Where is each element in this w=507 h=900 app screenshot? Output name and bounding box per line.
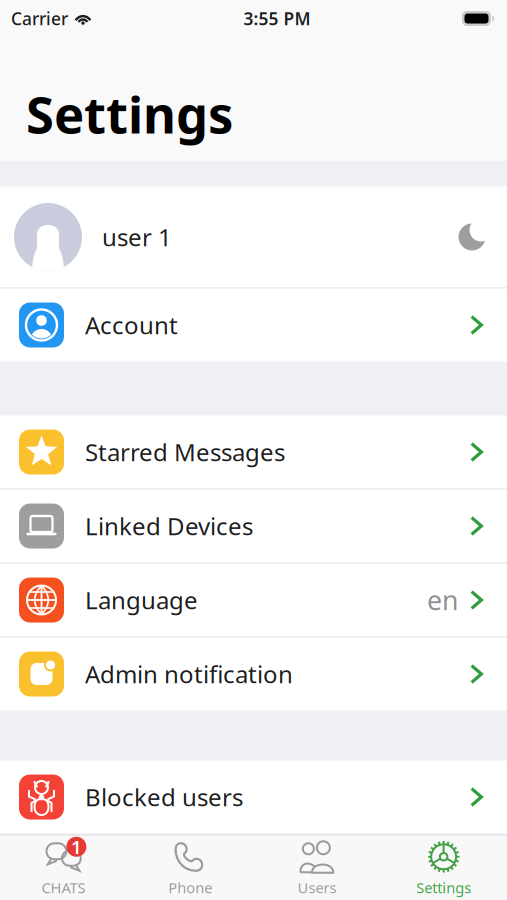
staticText: Carrier xyxy=(11,7,68,30)
button[interactable]: user 1 xyxy=(0,186,507,287)
button[interactable]: Linked Devices xyxy=(0,489,507,562)
staticText: en xyxy=(427,582,458,618)
button[interactable]: Phone xyxy=(127,835,254,900)
button[interactable]: Starred Messages xyxy=(0,415,507,488)
staticText: Phone xyxy=(168,878,212,897)
staticText: Admin notification xyxy=(85,658,293,690)
button[interactable]: Account xyxy=(0,288,507,361)
staticText: Settings xyxy=(416,878,471,897)
staticText: 1 xyxy=(71,834,82,859)
button[interactable]: Admin notification xyxy=(0,637,507,710)
staticText: Linked Devices xyxy=(85,510,253,542)
staticText: Users xyxy=(297,878,336,897)
button[interactable]: Blocked users xyxy=(0,760,507,833)
button[interactable]: Language xyxy=(0,563,507,636)
button[interactable]: Settings xyxy=(380,835,507,900)
button[interactable]: 1 xyxy=(0,835,127,900)
staticText: Starred Messages xyxy=(85,436,285,468)
staticText: 3:55 PM xyxy=(243,7,310,30)
staticText: CHATS xyxy=(41,878,85,897)
staticText: Language xyxy=(85,584,198,616)
staticText: user 1 xyxy=(102,221,172,253)
staticText: Blocked users xyxy=(85,781,243,813)
staticText: Account xyxy=(85,309,178,341)
button[interactable]: Users xyxy=(253,835,380,900)
staticText: Settings xyxy=(26,80,233,147)
